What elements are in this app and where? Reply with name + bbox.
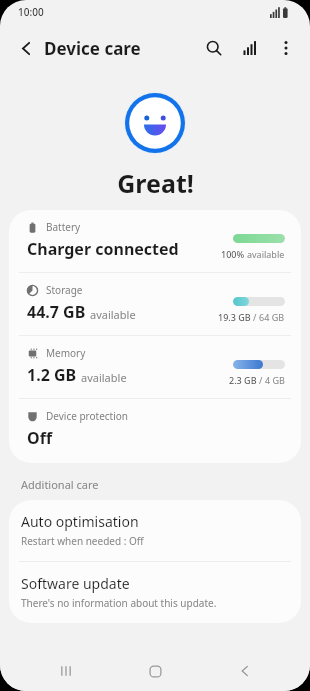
button[interactable]: Device protection bbox=[9, 399, 301, 463]
button[interactable]: Recents bbox=[42, 651, 90, 691]
staticText: 4 GB bbox=[265, 374, 285, 386]
staticText: Off bbox=[27, 427, 53, 449]
staticText: 100% bbox=[221, 248, 245, 260]
button[interactable]: Search bbox=[196, 30, 232, 66]
staticText: Memory bbox=[46, 346, 86, 360]
staticText: Charger connected bbox=[27, 238, 179, 260]
button[interactable]: Back bbox=[8, 30, 44, 66]
staticText: 1.2 GB bbox=[27, 364, 77, 386]
button[interactable]: Home bbox=[131, 651, 179, 691]
button[interactable]: Usage statistics bbox=[232, 30, 268, 66]
staticText: 19.3 GB bbox=[218, 311, 251, 323]
button[interactable]: More options bbox=[268, 30, 304, 66]
button[interactable]: Storage bbox=[9, 273, 301, 335]
staticText: Software update bbox=[21, 574, 130, 593]
staticText: Great! bbox=[117, 166, 194, 200]
staticText: 64 GB bbox=[259, 311, 285, 323]
staticText: Additional care bbox=[21, 477, 310, 492]
staticText: Restart when needed : Off bbox=[21, 534, 144, 548]
staticText: 2.3 GB bbox=[229, 374, 257, 386]
button[interactable]: Battery bbox=[9, 210, 301, 272]
staticText: Storage bbox=[46, 283, 83, 297]
staticText: Battery bbox=[46, 220, 81, 234]
button[interactable]: Back bbox=[221, 651, 269, 691]
staticText: Auto optimisation bbox=[21, 512, 139, 531]
staticText: 44.7 GB bbox=[27, 301, 86, 323]
button[interactable]: Software update bbox=[9, 562, 301, 623]
button[interactable]: Memory bbox=[9, 336, 301, 398]
staticText: Device protection bbox=[46, 409, 129, 423]
staticText: available bbox=[247, 248, 285, 260]
staticText: / bbox=[259, 374, 263, 386]
button[interactable]: Auto optimisation bbox=[9, 500, 301, 561]
staticText: available bbox=[81, 370, 127, 385]
staticText: 10:00 bbox=[18, 5, 44, 19]
staticText: available bbox=[90, 307, 136, 322]
staticText: There's no information about this update… bbox=[21, 596, 217, 610]
staticText: Device care bbox=[44, 37, 141, 60]
staticText: / bbox=[253, 311, 257, 323]
